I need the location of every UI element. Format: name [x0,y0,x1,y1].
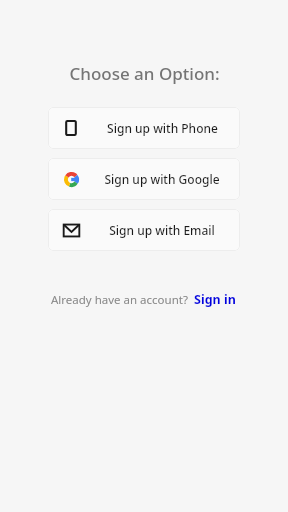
button[interactable]: Sign up with Email [48,209,240,251]
button[interactable]: Sign up with Phone [48,107,240,149]
other: Sign up with Google [64,172,79,187]
staticText: Sign up with Phone [107,120,218,136]
button[interactable]: Sign in [193,289,237,310]
staticText: Sign up with Email [109,222,215,238]
staticText: Sign in [194,291,236,308]
staticText: Sign up with Google [104,171,220,187]
staticText: Already have an account? [51,292,188,308]
other: Sign up with Phone [63,120,79,136]
other: Sign up with Email [63,222,80,239]
staticText: Choose an Option: [69,62,220,85]
button[interactable]: Sign up with Google [48,158,240,200]
